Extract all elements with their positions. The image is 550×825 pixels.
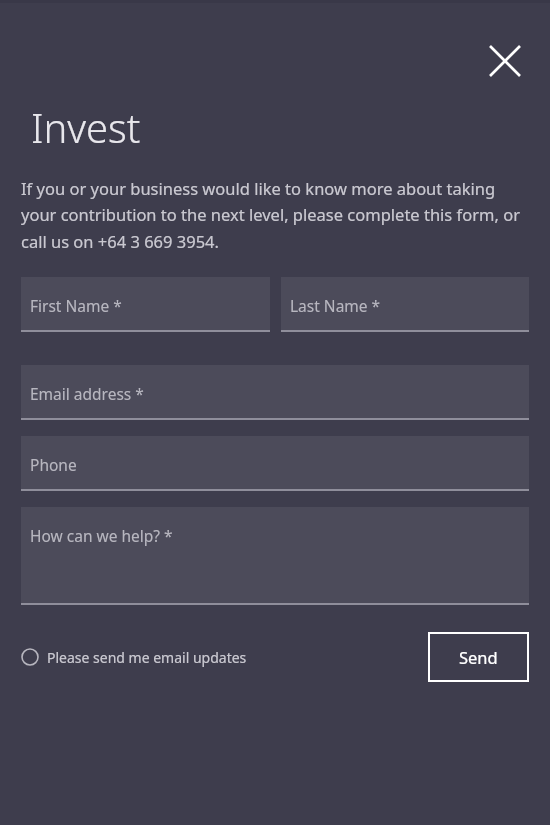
button[interactable]: Close [482, 38, 528, 84]
button[interactable]: Last Name * [281, 277, 529, 332]
staticText: Send [459, 646, 498, 668]
staticText: Phone [30, 454, 77, 475]
staticText: If you or your business would like to kn… [21, 177, 530, 253]
button[interactable]: How can we help? * [21, 507, 529, 605]
button[interactable]: First Name * [21, 277, 270, 332]
staticText: Email address * [30, 383, 144, 404]
button[interactable]: Phone [21, 436, 529, 491]
button[interactable]: Send [428, 632, 529, 682]
button[interactable]: Email address * [21, 365, 529, 420]
staticText: How can we help? * [30, 525, 173, 546]
button[interactable]: Please send me email updates [21, 632, 247, 682]
staticText: Invest [31, 100, 141, 154]
staticText: Please send me email updates [47, 648, 247, 667]
staticText: First Name * [30, 295, 122, 316]
staticText: Last Name * [290, 295, 381, 316]
